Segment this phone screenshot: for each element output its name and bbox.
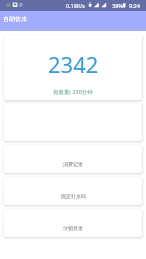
staticText: 9:24 <box>129 2 140 9</box>
staticText: 有效期: 230分钟 <box>53 88 93 96</box>
button[interactable]: 消费记录 <box>4 145 142 173</box>
button[interactable]: 2342 <box>4 35 142 100</box>
button[interactable]: 固定打水码 <box>4 177 142 205</box>
staticText: 消费记录 <box>63 161 83 167</box>
staticText: 自助饮水 <box>3 15 27 23</box>
staticText: 固定打水码 <box>61 193 86 199</box>
staticText: 注销登录 <box>63 225 83 231</box>
staticText: 0.18K/s <box>66 2 85 9</box>
staticText: 38% <box>112 2 123 9</box>
staticText: 2342 <box>48 49 99 79</box>
button[interactable]: 注销登录 <box>4 209 142 237</box>
